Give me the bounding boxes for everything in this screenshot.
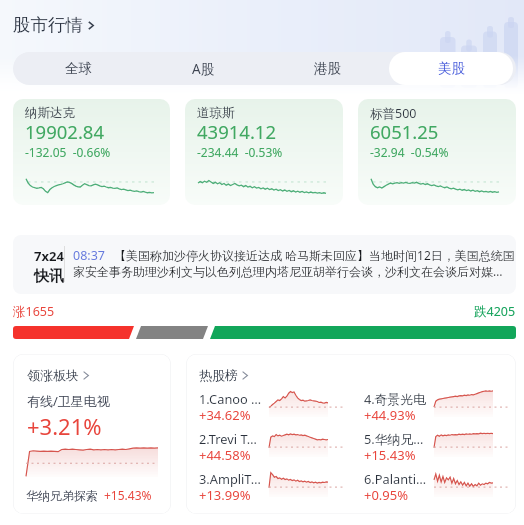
staticText: 纳斯达克 xyxy=(25,105,75,121)
staticText: 涨1655 xyxy=(13,303,55,320)
staticText: 6051.25 xyxy=(370,119,439,144)
staticText: 道琼斯 xyxy=(197,105,235,121)
staticText: 19902.84 xyxy=(25,119,105,144)
staticText: 标普500 xyxy=(370,105,417,122)
button[interactable]: 7x24 xyxy=(13,235,516,294)
button[interactable]: 热股榜 xyxy=(186,354,516,514)
staticText: A股 xyxy=(192,60,215,78)
staticText: 华纳兄弟探索 xyxy=(26,488,98,503)
staticText: 4.奇景光电 xyxy=(364,390,426,407)
staticText: 2.Trevi T… xyxy=(199,430,257,447)
staticText: -132.05 -0.66% xyxy=(25,144,111,160)
staticText: 领涨板块 xyxy=(27,367,79,383)
staticText: +3.21% xyxy=(27,411,102,441)
staticText: +44.58% xyxy=(199,446,251,464)
button[interactable]: 1.Canoo … xyxy=(199,384,343,424)
button[interactable]: 5.华纳兄… xyxy=(364,424,508,464)
staticText: 6.Palanti… xyxy=(364,470,427,487)
staticText: -234.44 -0.53% xyxy=(197,144,283,160)
button[interactable]: 纳斯达克 xyxy=(13,99,170,205)
staticText: 7x24 xyxy=(34,247,64,265)
staticText: 快讯 xyxy=(34,267,64,286)
button[interactable]: 4.奇景光电 xyxy=(364,384,508,424)
staticText: 08:37 xyxy=(73,247,105,264)
staticText: 全球 xyxy=(65,60,92,77)
button[interactable]: 全球 xyxy=(16,52,141,85)
staticText: 跌4205 xyxy=(474,303,516,320)
button[interactable]: 2.Trevi T… xyxy=(199,424,343,464)
staticText: +13.99% xyxy=(199,486,251,504)
staticText: 3.AmpliT… xyxy=(199,470,261,487)
staticText: 家安全事务助理沙利文与以色列总理内塔尼亚胡举行会谈，沙利文在会谈后对媒… xyxy=(73,263,503,279)
button[interactable]: 道琼斯 xyxy=(185,99,343,205)
staticText: 港股 xyxy=(314,60,341,77)
button[interactable]: 3.AmpliT… xyxy=(199,464,343,504)
staticText: 5.华纳兄… xyxy=(364,430,424,447)
staticText: +15.43% xyxy=(104,487,152,503)
staticText: 热股榜 xyxy=(199,367,238,383)
button[interactable]: 美股 xyxy=(389,52,513,85)
staticText: +44.93% xyxy=(364,406,416,424)
button[interactable]: 6.Palanti… xyxy=(364,464,508,504)
staticText: 美股 xyxy=(438,60,465,77)
button[interactable]: 股市行情 xyxy=(13,14,94,36)
staticText: +15.43% xyxy=(364,446,416,464)
button[interactable]: A股 xyxy=(141,52,265,85)
staticText: 股市行情 xyxy=(13,14,83,36)
button[interactable]: 标普500 xyxy=(358,99,516,205)
staticText: 【美国称加沙停火协议接近达成 哈马斯未回应】当地时间12日，美国总统国 xyxy=(114,247,515,263)
staticText: 43914.12 xyxy=(197,119,277,144)
staticText: 有线/卫星电视 xyxy=(27,392,110,410)
staticText: -32.94 -0.54% xyxy=(370,144,449,160)
button[interactable]: 领涨板块 xyxy=(13,354,171,514)
staticText: +34.62% xyxy=(199,406,251,424)
staticText: 1.Canoo … xyxy=(199,390,262,407)
staticText: +0.95% xyxy=(364,486,409,504)
button[interactable]: 港股 xyxy=(265,52,389,85)
